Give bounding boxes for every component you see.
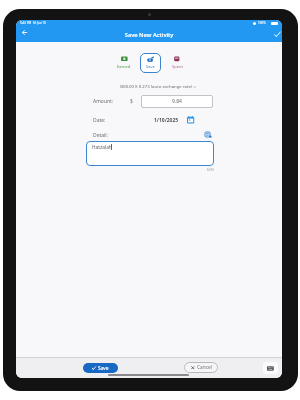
staticText: Detail: xyxy=(93,132,109,139)
staticText: 100% xyxy=(258,21,266,25)
button[interactable]: Hatzalah xyxy=(86,141,214,166)
staticText: 5:43 PM Fri Jan 10 xyxy=(20,21,46,25)
button[interactable]: Earned xyxy=(113,56,135,74)
staticText: B08.00 X 0.273 (auto exchange rate) = xyxy=(106,83,210,89)
button[interactable]: 9.84 xyxy=(141,95,213,108)
staticText: Date: xyxy=(93,117,106,124)
staticText: Save New Activity xyxy=(16,31,282,39)
button[interactable]: Cancel xyxy=(184,362,218,373)
staticText: Earned xyxy=(117,64,131,69)
button[interactable]: Spent xyxy=(166,56,188,74)
staticText: 9.84 xyxy=(172,98,182,105)
button[interactable]: Save xyxy=(140,53,161,73)
button[interactable] xyxy=(205,132,212,138)
staticText: Cancel xyxy=(197,364,212,371)
staticText: 1/10/2025 xyxy=(154,117,179,124)
staticText: Save xyxy=(98,365,109,372)
button[interactable]: Save xyxy=(83,363,118,373)
staticText: Spent xyxy=(172,64,183,69)
button[interactable] xyxy=(22,30,27,35)
staticText: Hatzalah xyxy=(92,144,112,151)
button[interactable] xyxy=(187,116,195,124)
staticText: Save xyxy=(146,64,155,69)
button[interactable] xyxy=(274,31,281,38)
staticText: Amount: xyxy=(93,98,114,105)
staticText: 6/93 xyxy=(207,167,214,171)
button[interactable] xyxy=(263,362,278,374)
staticText: $ xyxy=(130,98,133,105)
